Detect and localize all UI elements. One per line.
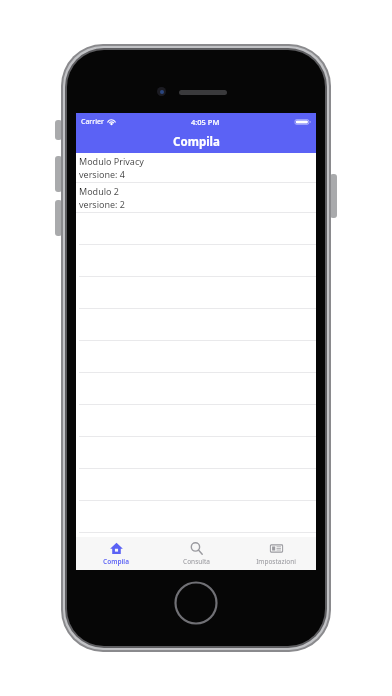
button[interactable]: Impostazioni	[236, 537, 316, 566]
other: Impostazioni	[270, 542, 283, 555]
staticText: Compila	[173, 134, 220, 150]
staticText: 4:05 PM	[191, 117, 220, 127]
staticText: Carrier	[81, 117, 104, 127]
other: Compila	[110, 542, 123, 555]
button[interactable]: Consulta	[156, 537, 236, 566]
staticText: Compila	[103, 557, 129, 566]
staticText: Modulo 2	[79, 185, 119, 197]
button[interactable]: Compila	[76, 537, 156, 566]
staticText: Consulta	[183, 557, 210, 566]
staticText: Modulo Privacy	[79, 155, 144, 167]
staticText: versione: 4	[79, 168, 125, 180]
staticText: versione: 2	[79, 198, 125, 210]
button[interactable]: Modulo 2	[76, 183, 316, 212]
button[interactable]: Modulo Privacy	[76, 153, 316, 182]
staticText: Impostazioni	[256, 557, 296, 566]
other: Consulta	[190, 542, 203, 555]
